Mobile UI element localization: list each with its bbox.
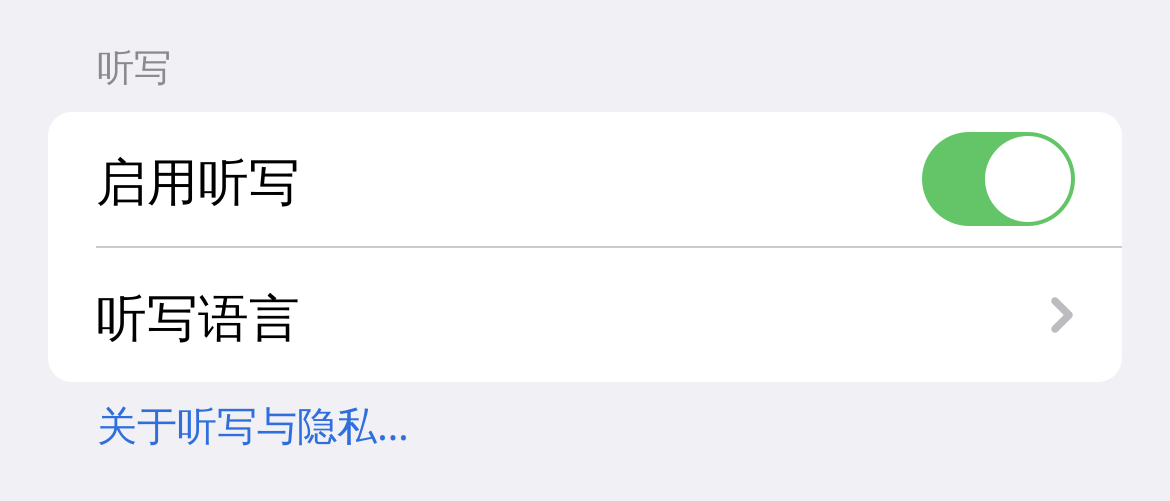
staticText: 听写 [97, 45, 171, 91]
staticText: 听写语言 [96, 288, 300, 350]
button[interactable]: 听写语言 [48, 248, 1122, 382]
staticText: 启用听写 [96, 152, 300, 214]
button[interactable]: 启用听写 [48, 112, 1122, 246]
button[interactable]: 关于听写与隐私… [97, 382, 427, 454]
staticText: 关于听写与隐私… [97, 398, 409, 451]
